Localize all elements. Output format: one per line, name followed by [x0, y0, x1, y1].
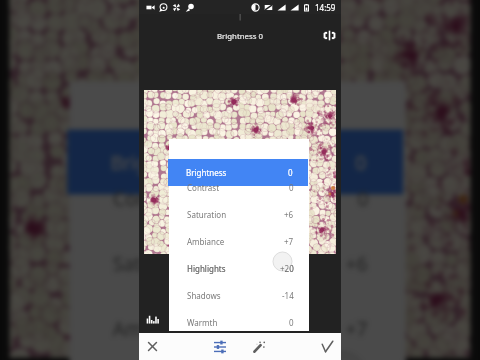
staticText: Brightness: [110, 149, 209, 175]
staticText: Saturation: [113, 250, 209, 276]
staticText: 0: [358, 185, 370, 211]
staticText: Ambiance: [187, 236, 225, 247]
staticText: +7: [284, 236, 294, 247]
button[interactable]: Highlights: [169, 255, 309, 282]
staticText: Shadows: [187, 290, 221, 301]
button[interactable]: Brightness: [168, 159, 308, 186]
staticText: Highlights: [187, 263, 226, 274]
staticText: +20: [280, 263, 294, 274]
button[interactable]: Ambiance: [70, 295, 406, 360]
staticText: Contrast: [187, 182, 220, 193]
staticText: 0: [288, 167, 293, 178]
staticText: Highlights: [187, 263, 226, 274]
staticText: 0: [289, 317, 294, 328]
staticText: 14:59: [315, 2, 336, 13]
staticText: +6: [284, 209, 294, 220]
button[interactable]: Cancel: [139, 333, 166, 360]
staticText: +6: [346, 250, 370, 276]
staticText: Brightness 0: [217, 31, 263, 42]
button[interactable]: Auto adjust: [246, 333, 273, 360]
staticText: -14: [282, 290, 294, 301]
button[interactable]: Tune image: [206, 333, 233, 360]
staticText: Ambiance: [113, 314, 204, 341]
staticText: Saturation: [187, 209, 227, 220]
staticText: Contrast: [113, 185, 192, 211]
button[interactable]: Ambiance: [169, 228, 309, 255]
button[interactable]: Saturation: [70, 230, 406, 295]
button[interactable]: Contrast: [70, 166, 406, 230]
button[interactable]: Brightness: [67, 130, 403, 194]
staticText: +7: [346, 314, 370, 341]
button[interactable]: Apply: [314, 333, 341, 360]
button[interactable]: Contrast: [169, 174, 309, 201]
button[interactable]: Compare: [323, 30, 336, 41]
button[interactable]: Shadows: [169, 282, 309, 309]
button[interactable]: Warmth: [169, 309, 309, 336]
staticText: 0: [289, 182, 294, 193]
staticText: Warmth: [187, 317, 218, 328]
button[interactable]: Histogram: [146, 315, 159, 324]
staticText: Brightness: [186, 167, 227, 178]
staticText: 0: [355, 149, 367, 175]
staticText: +20: [280, 263, 294, 274]
button[interactable]: Saturation: [169, 201, 309, 228]
